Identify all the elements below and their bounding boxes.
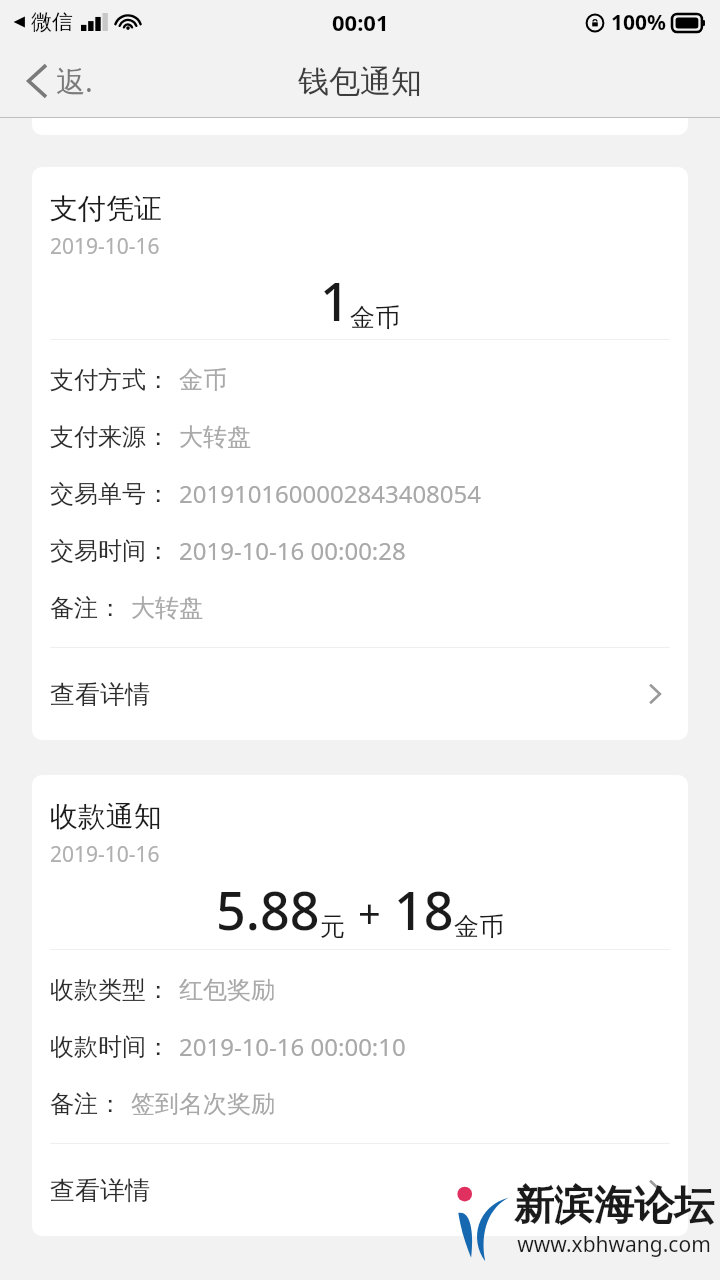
button[interactable]: 查看详情 <box>32 648 688 740</box>
staticText: 5.88 <box>216 874 320 945</box>
staticText: 2019-10-16 <box>50 840 160 869</box>
staticText: 备注： <box>50 1089 122 1119</box>
staticText: 签到名次奖励 <box>131 1089 275 1119</box>
staticText: 支付方式： <box>50 365 170 395</box>
staticText: 新滨海论坛 <box>514 1180 714 1230</box>
staticText: 100% <box>611 8 666 37</box>
staticText: 2019-10-16 <box>50 232 160 261</box>
staticText: 金币 <box>179 365 227 395</box>
staticText: 18 <box>394 874 454 945</box>
staticText: 返. <box>56 61 93 101</box>
staticText: 查看详情 <box>50 679 150 710</box>
staticText: 2019-10-16 00:00:28 <box>179 534 406 567</box>
staticText: 红包奖励 <box>179 975 275 1005</box>
staticText: 查看详情 <box>50 1175 150 1206</box>
staticText: 2019101600002843408054 <box>179 477 482 510</box>
staticText: 00:01 <box>332 7 389 37</box>
staticText: 大转盘 <box>179 422 251 452</box>
staticText: 支付凭证 <box>50 191 162 226</box>
staticText: www.xbhwang.com <box>517 1230 711 1259</box>
staticText: 交易单号： <box>50 479 170 509</box>
button[interactable]: 查看详情 <box>32 1144 688 1236</box>
staticText: 大转盘 <box>131 593 203 623</box>
staticText: 2019-10-16 00:00:10 <box>179 1030 406 1063</box>
staticText: 金币 <box>350 302 400 333</box>
button[interactable]: 返回 <box>0 44 111 118</box>
staticText: 收款时间： <box>50 1032 170 1062</box>
staticText: 微信 <box>31 9 73 35</box>
staticText: 1 <box>320 265 350 336</box>
staticText: 备注： <box>50 593 122 623</box>
staticText: 收款通知 <box>50 799 162 834</box>
staticText: 支付来源： <box>50 422 170 452</box>
staticText: 金币 <box>454 911 504 942</box>
staticText: + <box>358 885 381 939</box>
staticText: 收款类型： <box>50 975 170 1005</box>
staticText: 元 <box>320 911 345 942</box>
staticText: 钱包通知 <box>298 62 422 101</box>
staticText: 交易时间： <box>50 536 170 566</box>
